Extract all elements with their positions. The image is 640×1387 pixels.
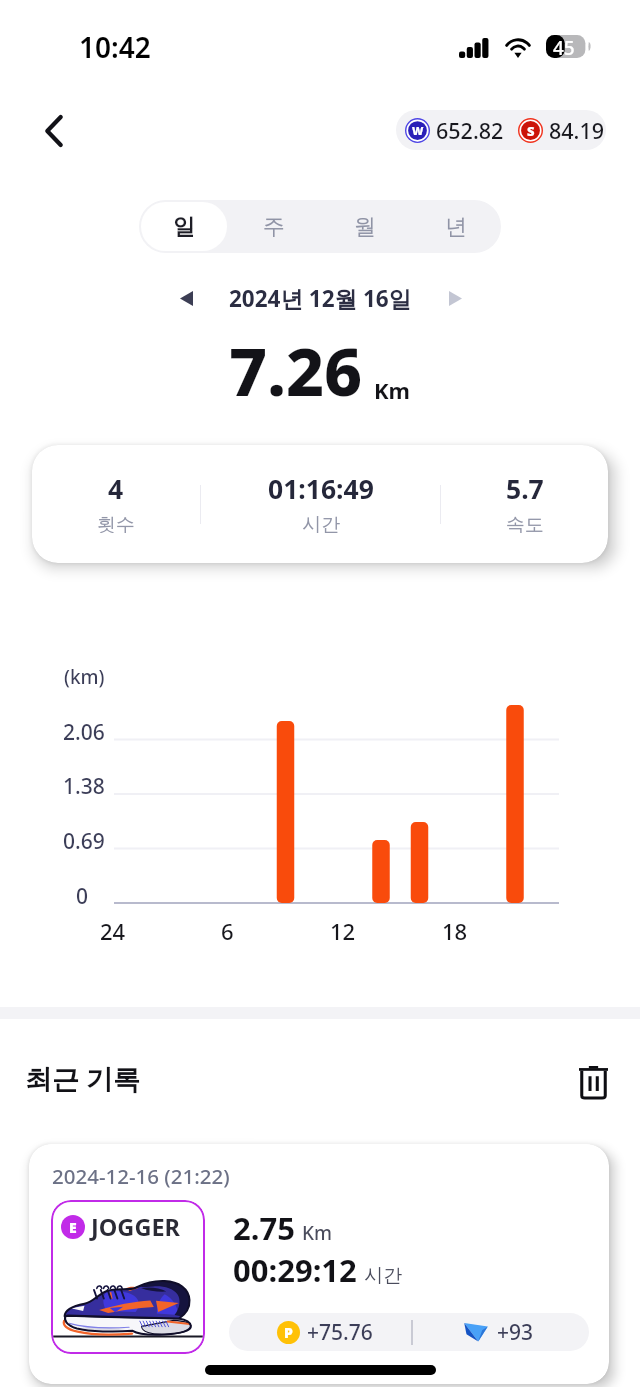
staticText: W bbox=[412, 123, 424, 138]
staticText: 01:16:49 bbox=[268, 471, 374, 507]
staticText: 18 bbox=[442, 916, 468, 946]
staticText: P bbox=[284, 1323, 293, 1342]
staticText: 0 bbox=[76, 882, 89, 911]
staticText: 횟수 bbox=[97, 513, 135, 537]
staticText: 일 bbox=[173, 213, 195, 241]
staticText: 시간 bbox=[302, 513, 340, 537]
button[interactable]: P bbox=[229, 1313, 589, 1351]
staticText: 652.82 bbox=[436, 116, 504, 145]
staticText: (km) bbox=[64, 664, 105, 690]
staticText: 24 bbox=[100, 916, 126, 946]
button[interactable]: Previous day bbox=[164, 276, 208, 320]
staticText: 주 bbox=[263, 213, 285, 241]
staticText: JOGGER bbox=[91, 1211, 180, 1243]
staticText: Km bbox=[374, 375, 411, 405]
staticText: 최근 기록 bbox=[25, 1060, 141, 1097]
button[interactable]: 2024-12-16 (21:22) bbox=[29, 1144, 609, 1384]
staticText: 00:29:12 bbox=[233, 1249, 357, 1291]
staticText: 7.26 bbox=[229, 325, 363, 415]
staticText: 시간 bbox=[364, 1264, 402, 1288]
staticText: S bbox=[527, 122, 535, 140]
staticText: 년 bbox=[445, 213, 467, 241]
staticText: 10:42 bbox=[79, 28, 151, 66]
staticText: E bbox=[69, 1218, 77, 1237]
staticText: 2.06 bbox=[63, 718, 105, 747]
button[interactable]: W bbox=[396, 110, 606, 150]
staticText: +93 bbox=[497, 1318, 534, 1347]
button[interactable]: 년 bbox=[412, 202, 499, 251]
button[interactable]: 일 bbox=[141, 202, 227, 251]
staticText: 0.69 bbox=[63, 827, 105, 856]
staticText: 1.38 bbox=[63, 772, 105, 801]
button[interactable]: Next day bbox=[433, 276, 477, 320]
staticText: 월 bbox=[354, 213, 376, 241]
staticText: 6 bbox=[221, 916, 234, 946]
button[interactable]: 주 bbox=[231, 202, 317, 251]
staticText: 속도 bbox=[506, 513, 544, 537]
staticText: 4 bbox=[108, 471, 124, 507]
staticText: 2024년 12월 16일 bbox=[229, 283, 412, 314]
staticText: 2.75 bbox=[233, 1207, 295, 1249]
staticText: 5.7 bbox=[506, 471, 544, 507]
button[interactable]: Delete records bbox=[562, 1052, 624, 1112]
staticText: 84.19 bbox=[549, 116, 605, 145]
staticText: 45 bbox=[553, 35, 575, 58]
button[interactable]: Back bbox=[29, 106, 79, 156]
staticText: +75.76 bbox=[307, 1318, 373, 1347]
staticText: Km bbox=[302, 1220, 333, 1246]
staticText: 2024-12-16 (21:22) bbox=[52, 1162, 230, 1190]
button[interactable]: 월 bbox=[321, 202, 408, 251]
staticText: 12 bbox=[330, 916, 356, 946]
